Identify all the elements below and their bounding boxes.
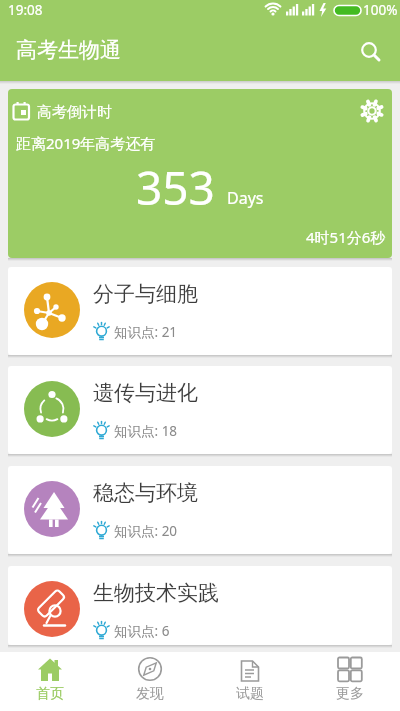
staticText: 知识点: 20 — [114, 522, 178, 540]
staticText: 353 — [136, 156, 215, 219]
staticText: 知识点: 18 — [114, 422, 178, 440]
button[interactable]: 遗传与进化 — [8, 366, 392, 454]
staticText: Days — [227, 187, 264, 209]
staticText: 稳态与环境 — [93, 480, 198, 506]
staticText: 生物技术实践 — [93, 580, 219, 606]
button[interactable] — [360, 99, 384, 123]
staticText: 19:08 — [8, 1, 43, 19]
button[interactable]: 发现 — [100, 652, 200, 711]
staticText: 更多 — [336, 685, 364, 703]
staticText: 试题 — [236, 685, 264, 703]
staticText: 4时51分6秒 — [306, 227, 386, 247]
staticText: 高考倒计时 — [37, 103, 112, 122]
staticText: 首页 — [36, 685, 64, 703]
button[interactable] — [356, 37, 384, 65]
button[interactable]: 首页 — [0, 652, 100, 711]
staticText: 分子与细胞 — [93, 281, 198, 307]
staticText: 发现 — [136, 685, 164, 703]
button[interactable]: 高考倒计时 — [8, 89, 392, 258]
staticText: 知识点: 6 — [114, 622, 170, 640]
button[interactable]: 生物技术实践 — [8, 566, 392, 645]
staticText: 距离2019年高考还有 — [16, 133, 156, 153]
staticText: 遗传与进化 — [93, 380, 198, 406]
button[interactable]: 试题 — [200, 652, 300, 711]
button[interactable]: 分子与细胞 — [8, 267, 392, 355]
button[interactable]: 稳态与环境 — [8, 466, 392, 554]
staticText: 知识点: 21 — [114, 323, 178, 341]
button[interactable]: 更多 — [300, 652, 400, 711]
staticText: 高考生物通 — [16, 37, 121, 63]
staticText: 100% — [363, 1, 398, 19]
